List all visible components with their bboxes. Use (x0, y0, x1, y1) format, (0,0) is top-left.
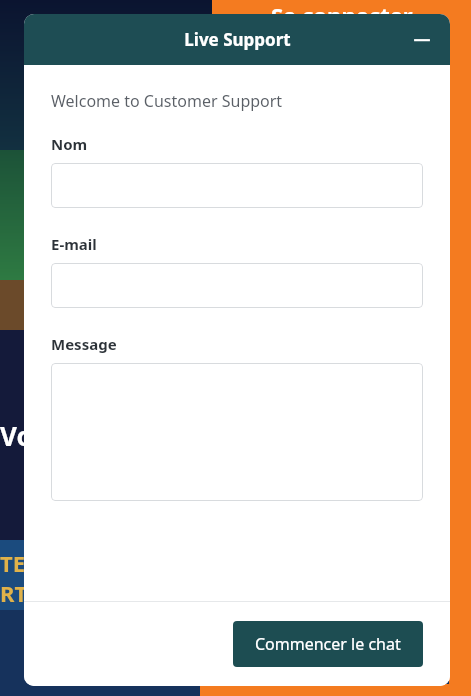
button[interactable] (51, 263, 423, 308)
staticText: E-mail (51, 234, 97, 254)
staticText: TEC RT (0, 548, 40, 608)
button[interactable] (51, 163, 423, 208)
staticText: Message (51, 334, 117, 354)
staticText: Se connecter (271, 0, 413, 22)
button[interactable] (51, 363, 423, 501)
staticText: Welcome to Customer Support (51, 90, 283, 112)
staticText: Vo (0, 418, 33, 453)
staticText: Nom (51, 134, 88, 154)
staticText: Commencer le chat (255, 633, 401, 655)
staticText: Live Support (184, 28, 291, 51)
button[interactable]: Se connecter (212, 0, 471, 22)
button[interactable]: Commencer le chat (233, 621, 423, 667)
button[interactable]: Minimize (404, 22, 440, 58)
